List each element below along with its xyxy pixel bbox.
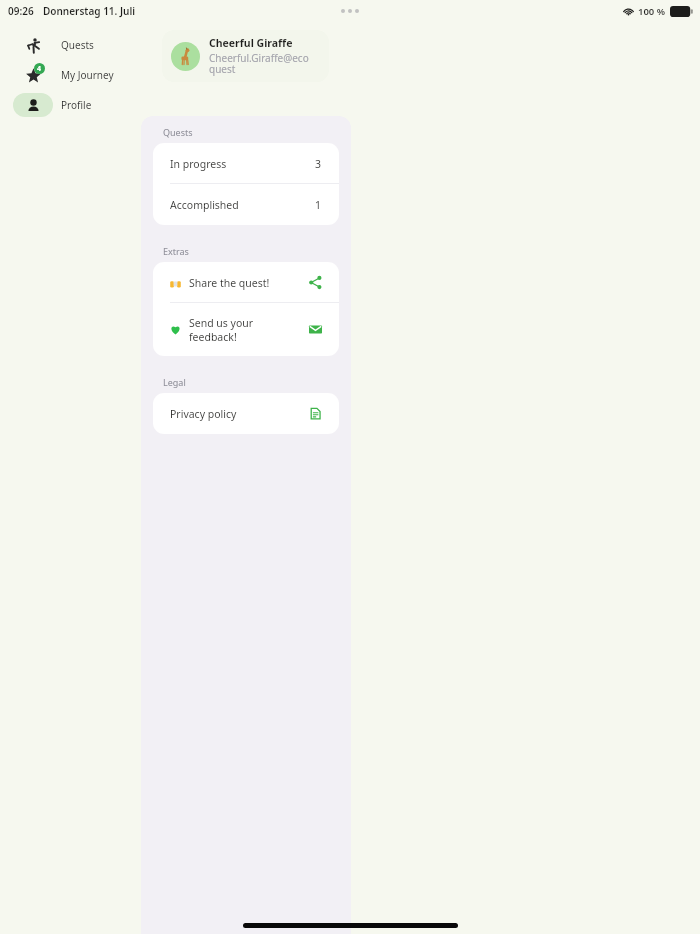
button[interactable]: Send us your feedback! — [153, 303, 339, 356]
staticText: Profile — [61, 98, 92, 112]
staticText: 100 % — [638, 5, 666, 18]
button[interactable]: Accomplished — [153, 184, 339, 225]
staticText: Cheerful.Giraffe@eco quest — [209, 51, 309, 76]
staticText: Quests — [61, 38, 94, 52]
staticText: 4 — [37, 64, 42, 74]
button[interactable]: Cheerful Giraffe — [162, 30, 329, 82]
other: Share — [309, 276, 322, 289]
button[interactable]: 4 — [0, 60, 141, 90]
staticText: Donnerstag 11. Juli — [43, 4, 136, 18]
staticText: Quests — [163, 126, 193, 138]
button[interactable]: Share the quest! — [153, 262, 339, 303]
staticText: Send us your feedback! — [189, 316, 254, 344]
staticText: Cheerful Giraffe — [209, 36, 293, 50]
button[interactable]: Privacy policy — [153, 393, 339, 434]
staticText: Extras — [163, 245, 189, 257]
staticText: My Journey — [61, 68, 114, 82]
staticText: In progress — [170, 157, 227, 171]
staticText: 1 — [315, 198, 322, 212]
button[interactable]: In progress — [153, 143, 339, 184]
staticText: Accomplished — [170, 198, 239, 212]
staticText: 3 — [315, 157, 322, 171]
staticText: Privacy policy — [170, 407, 237, 421]
button[interactable]: Profile — [0, 90, 141, 120]
button[interactable]: Quests — [0, 30, 141, 60]
staticText: Share the quest! — [189, 276, 270, 290]
other: Privacy policy — [309, 407, 322, 420]
staticText: 09:26 — [8, 4, 34, 18]
other: Send feedback — [309, 323, 322, 336]
staticText: Legal — [163, 376, 186, 388]
